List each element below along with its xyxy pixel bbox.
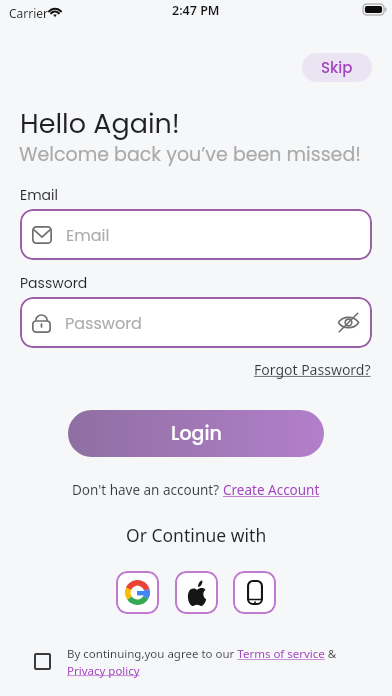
staticText: 2:47 PM: [172, 2, 220, 19]
staticText: Email: [20, 185, 58, 205]
staticText: Don't have an account?: [72, 481, 223, 499]
button[interactable]: Agree to terms: [34, 653, 51, 670]
other: Show password: [337, 311, 360, 334]
button[interactable]: Sign in with Apple: [175, 571, 218, 614]
staticText: Login: [171, 420, 222, 447]
staticText: Email: [66, 224, 110, 246]
staticText: Skip: [321, 57, 353, 78]
button[interactable]: Password: [20, 297, 372, 348]
button[interactable]: By continuing,you agree to our Terms of …: [67, 646, 347, 678]
staticText: Password: [65, 312, 142, 334]
button[interactable]: Email: [20, 209, 372, 260]
button[interactable]: Sign in with Google: [116, 571, 159, 614]
button[interactable]: Forgot Password?: [254, 360, 371, 379]
staticText: Or Continue with: [126, 523, 267, 547]
staticText: Password: [20, 273, 88, 293]
staticText: Carrier: [9, 5, 49, 21]
button[interactable]: Create Account: [223, 481, 320, 499]
button[interactable]: Sign in with phone number: [233, 571, 276, 614]
staticText: Welcome back you’ve been missed!: [19, 141, 361, 168]
button[interactable]: Login: [68, 410, 324, 457]
staticText: Hello Again!: [20, 105, 180, 143]
button[interactable]: Skip: [302, 53, 372, 82]
